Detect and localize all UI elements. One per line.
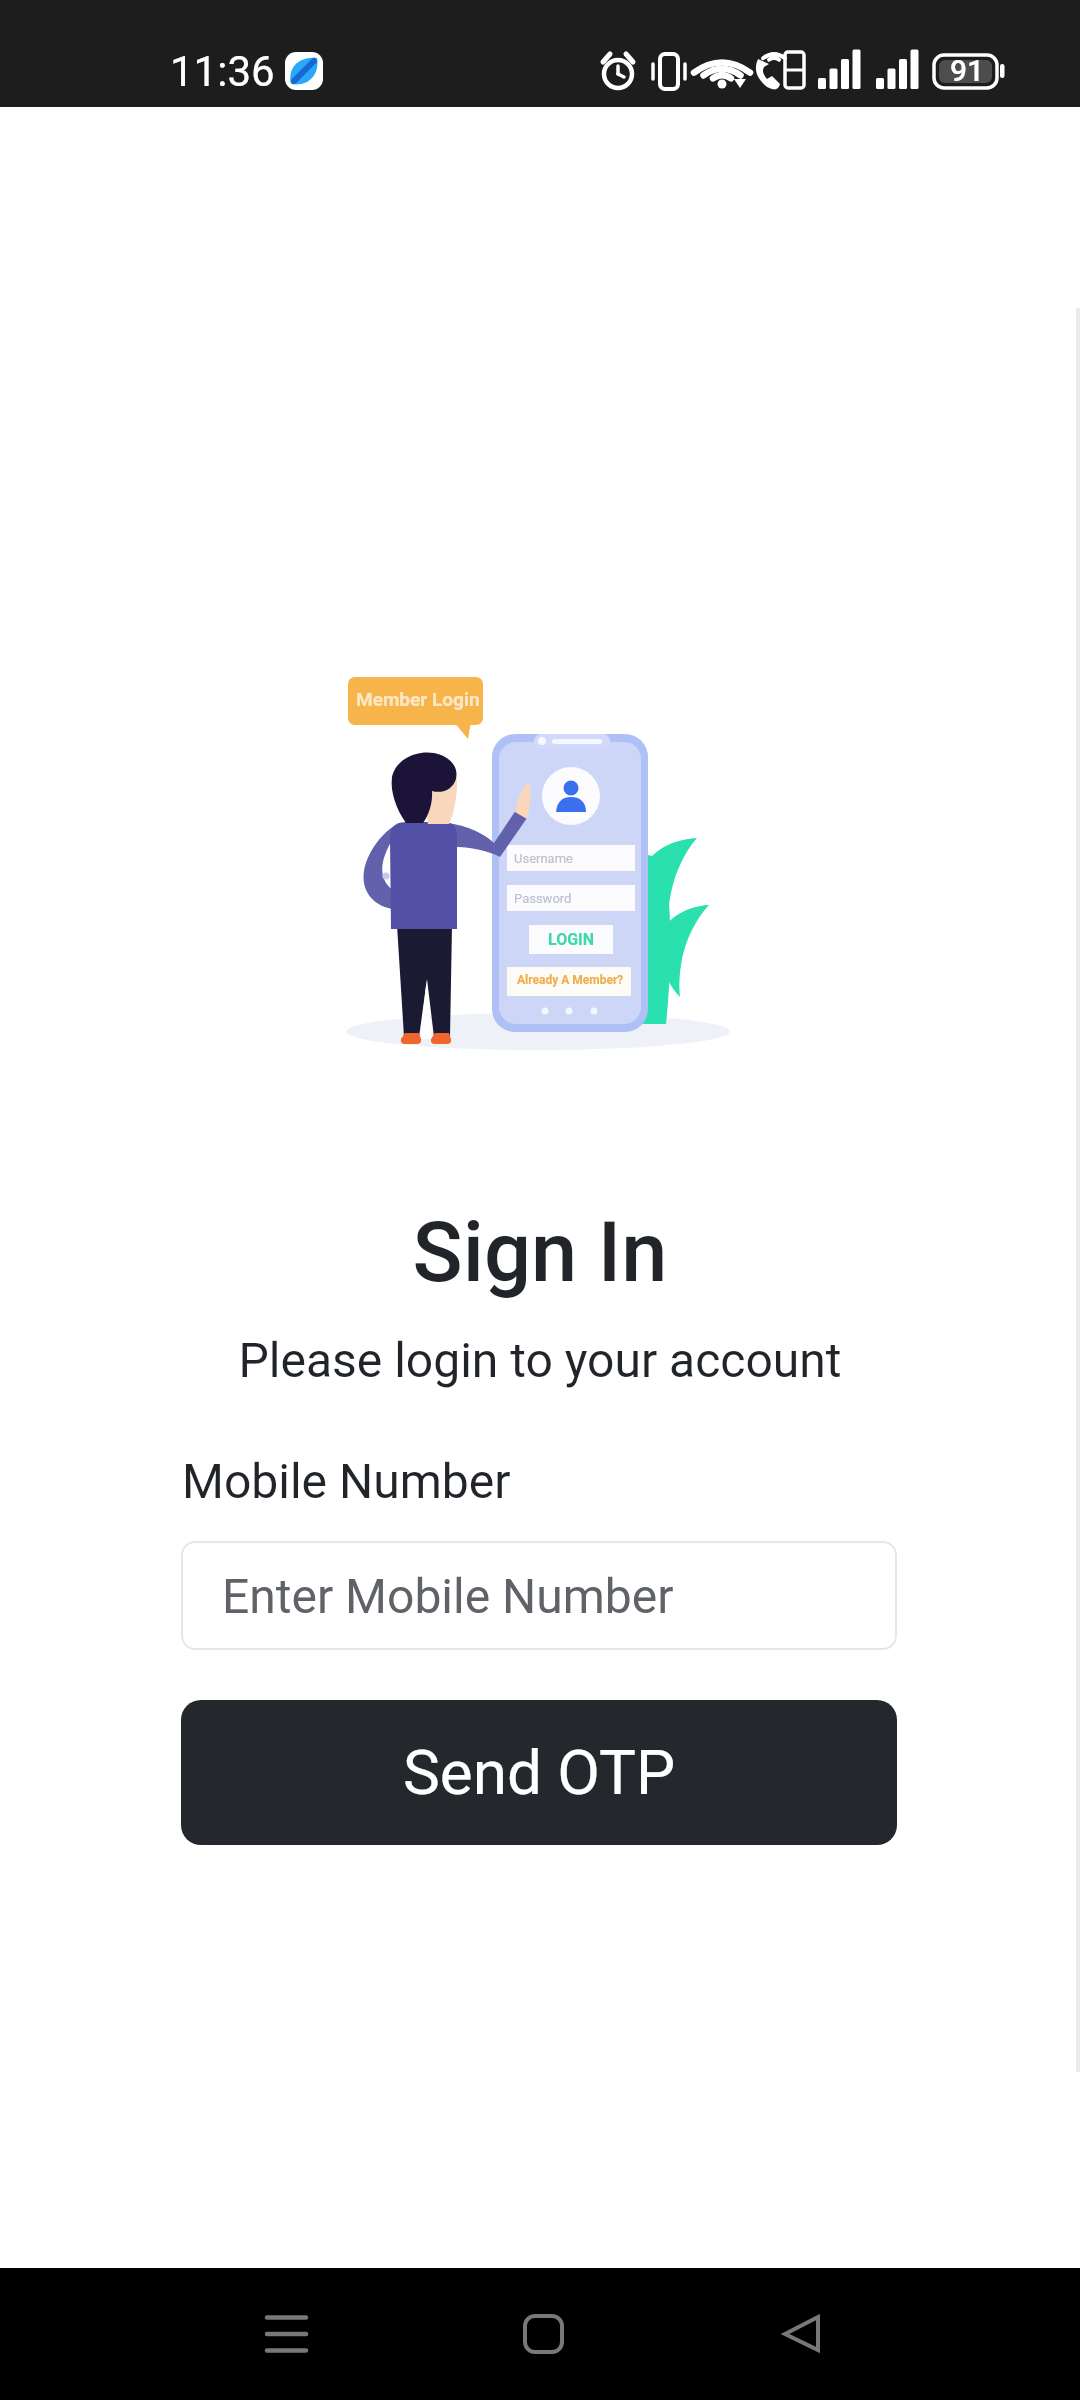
staticText: Already A Member? (517, 973, 624, 987)
staticText: LOGIN (548, 930, 595, 949)
staticText: Password (514, 891, 572, 906)
staticText: Sign In (0, 1204, 1080, 1301)
staticText: 11:36 (170, 47, 275, 96)
staticText: Enter Mobile Number (222, 1568, 674, 1624)
button[interactable]: Send OTP (181, 1700, 897, 1845)
staticText: Please login to your account (0, 1332, 1080, 1388)
staticText: 91 (950, 53, 985, 88)
button[interactable]: Recent apps (226, 2279, 336, 2389)
staticText: Member Login (356, 688, 480, 710)
staticText: Mobile Number (182, 1453, 511, 1509)
staticText: Username (514, 851, 573, 866)
button[interactable]: Home (485, 2279, 595, 2389)
button[interactable]: Enter Mobile Number (181, 1541, 897, 1650)
button[interactable]: Back (746, 2279, 856, 2389)
staticText: Send OTP (403, 1736, 676, 1809)
